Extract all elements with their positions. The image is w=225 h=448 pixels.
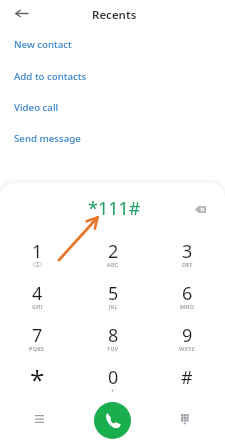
staticText: 1 <box>32 239 43 264</box>
button[interactable]: 0 <box>83 361 143 399</box>
staticText: TUV <box>107 345 119 352</box>
staticText: Add to contacts <box>14 70 87 83</box>
staticText: 7 <box>32 323 43 348</box>
button[interactable]: 1 <box>7 235 67 273</box>
staticText: Recents <box>92 7 137 23</box>
staticText: 0 <box>108 365 119 390</box>
button[interactable]: 7 <box>7 319 67 357</box>
staticText: JKL <box>109 303 118 310</box>
staticText: *111# <box>88 196 141 221</box>
button[interactable]: 3 <box>157 235 217 273</box>
staticText: + <box>111 387 115 394</box>
button[interactable]: * <box>7 361 67 399</box>
staticText: New contact <box>14 38 72 51</box>
button[interactable]: 2 <box>83 235 143 273</box>
staticText: 5 <box>108 281 119 306</box>
staticText: WXYZ <box>179 345 196 352</box>
staticText: 4 <box>32 281 43 306</box>
button[interactable]: 8 <box>83 319 143 357</box>
button[interactable]: # <box>157 361 217 399</box>
button[interactable]: 9 <box>157 319 217 357</box>
button[interactable]: Back <box>8 0 34 26</box>
button[interactable]: Add to contacts <box>0 65 225 87</box>
button[interactable]: Call history <box>26 406 52 432</box>
staticText: GHI <box>32 303 43 310</box>
button[interactable]: Keypad <box>172 406 198 432</box>
button[interactable]: Backspace <box>189 198 211 220</box>
staticText: DEF <box>182 261 193 268</box>
button[interactable]: 5 <box>83 277 143 315</box>
button[interactable]: Call <box>94 402 131 439</box>
staticText: * <box>30 361 45 396</box>
staticText: 3 <box>182 239 193 264</box>
staticText: PQRS <box>29 345 45 352</box>
staticText: MNO <box>180 303 195 310</box>
staticText: Video call <box>14 101 59 114</box>
staticText: 2 <box>108 239 119 264</box>
button[interactable]: 6 <box>157 277 217 315</box>
button[interactable]: 4 <box>7 277 67 315</box>
staticText: # <box>181 365 193 390</box>
button[interactable]: New contact <box>0 33 225 55</box>
staticText: 8 <box>108 323 119 348</box>
staticText: 6 <box>182 281 193 306</box>
button[interactable]: Send message <box>0 127 225 149</box>
button[interactable]: Video call <box>0 96 225 118</box>
staticText: ABC <box>107 261 119 268</box>
staticText: Send message <box>14 132 81 145</box>
staticText: 9 <box>182 323 193 348</box>
